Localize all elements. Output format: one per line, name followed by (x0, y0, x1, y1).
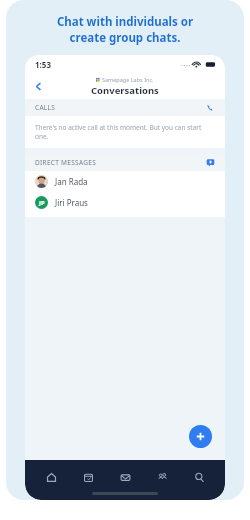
button[interactable]: Home (40, 466, 62, 488)
button[interactable]: People (151, 466, 173, 488)
button[interactable]: Tasks (77, 466, 99, 488)
staticText: 1:53 (35, 59, 51, 70)
staticText: Chat with individuals or create group ch… (6, 14, 244, 45)
button[interactable]: Jan Rada (25, 171, 225, 192)
staticText: Samepage Labs Inc. (102, 76, 154, 83)
button[interactable]: Inbox (114, 466, 136, 488)
button[interactable]: Search (188, 466, 210, 488)
button[interactable]: CALLS (25, 99, 225, 116)
staticText: Jiri Praus (55, 197, 88, 208)
staticText: CALLS (35, 103, 56, 112)
staticText: Jan Rada (55, 176, 88, 187)
button[interactable]: JP (25, 192, 225, 213)
button[interactable]: New conversation (189, 425, 212, 448)
staticText: JP (39, 199, 45, 207)
staticText: There's no active call at this moment. B… (35, 123, 215, 141)
button[interactable]: Back (30, 78, 46, 94)
button[interactable]: DIRECT MESSAGES (25, 154, 225, 171)
staticText: DIRECT MESSAGES (35, 158, 97, 167)
staticText: Conversations (91, 84, 159, 97)
